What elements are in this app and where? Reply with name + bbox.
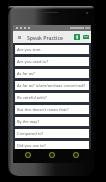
staticText: As far as? bbox=[17, 71, 35, 76]
staticText: But this doesn't mean that? bbox=[17, 107, 69, 112]
button[interactable]: Menu bbox=[13, 31, 25, 43]
button[interactable]: As far as? bbox=[15, 69, 89, 78]
button[interactable]: As far as? is/are/am/was concerned? bbox=[15, 81, 89, 90]
staticText: Be careful with? bbox=[17, 95, 47, 100]
button[interactable]: Did you use to? bbox=[15, 141, 89, 149]
button[interactable]: Email bbox=[81, 31, 90, 43]
staticText: Are you used to? bbox=[17, 59, 49, 64]
button[interactable]: Recents bbox=[67, 149, 85, 163]
button[interactable]: Are you sure. bbox=[15, 45, 89, 54]
staticText: Speak Practice bbox=[27, 34, 63, 41]
button[interactable]: Home bbox=[43, 149, 61, 163]
button[interactable]: Share on Facebook bbox=[72, 31, 81, 43]
button[interactable]: Back bbox=[19, 149, 37, 163]
staticText: Are you sure. bbox=[17, 47, 42, 52]
staticText: As far as? is/are/am/was concerned? bbox=[17, 83, 86, 88]
button[interactable]: Be careful with? bbox=[15, 93, 89, 102]
staticText: By the way? bbox=[17, 119, 40, 124]
button[interactable]: By the way? bbox=[15, 117, 89, 126]
button[interactable]: Compared to? bbox=[15, 129, 89, 138]
button[interactable]: Are you used to? bbox=[15, 57, 89, 66]
staticText: Did you use to? bbox=[17, 143, 46, 148]
staticText: Compared to? bbox=[17, 131, 44, 136]
button[interactable]: But this doesn't mean that? bbox=[15, 105, 89, 114]
